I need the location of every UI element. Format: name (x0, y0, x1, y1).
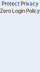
staticText: Protect Privacy (1, 0, 38, 7)
staticText: Zero Login Policy (0, 7, 40, 14)
